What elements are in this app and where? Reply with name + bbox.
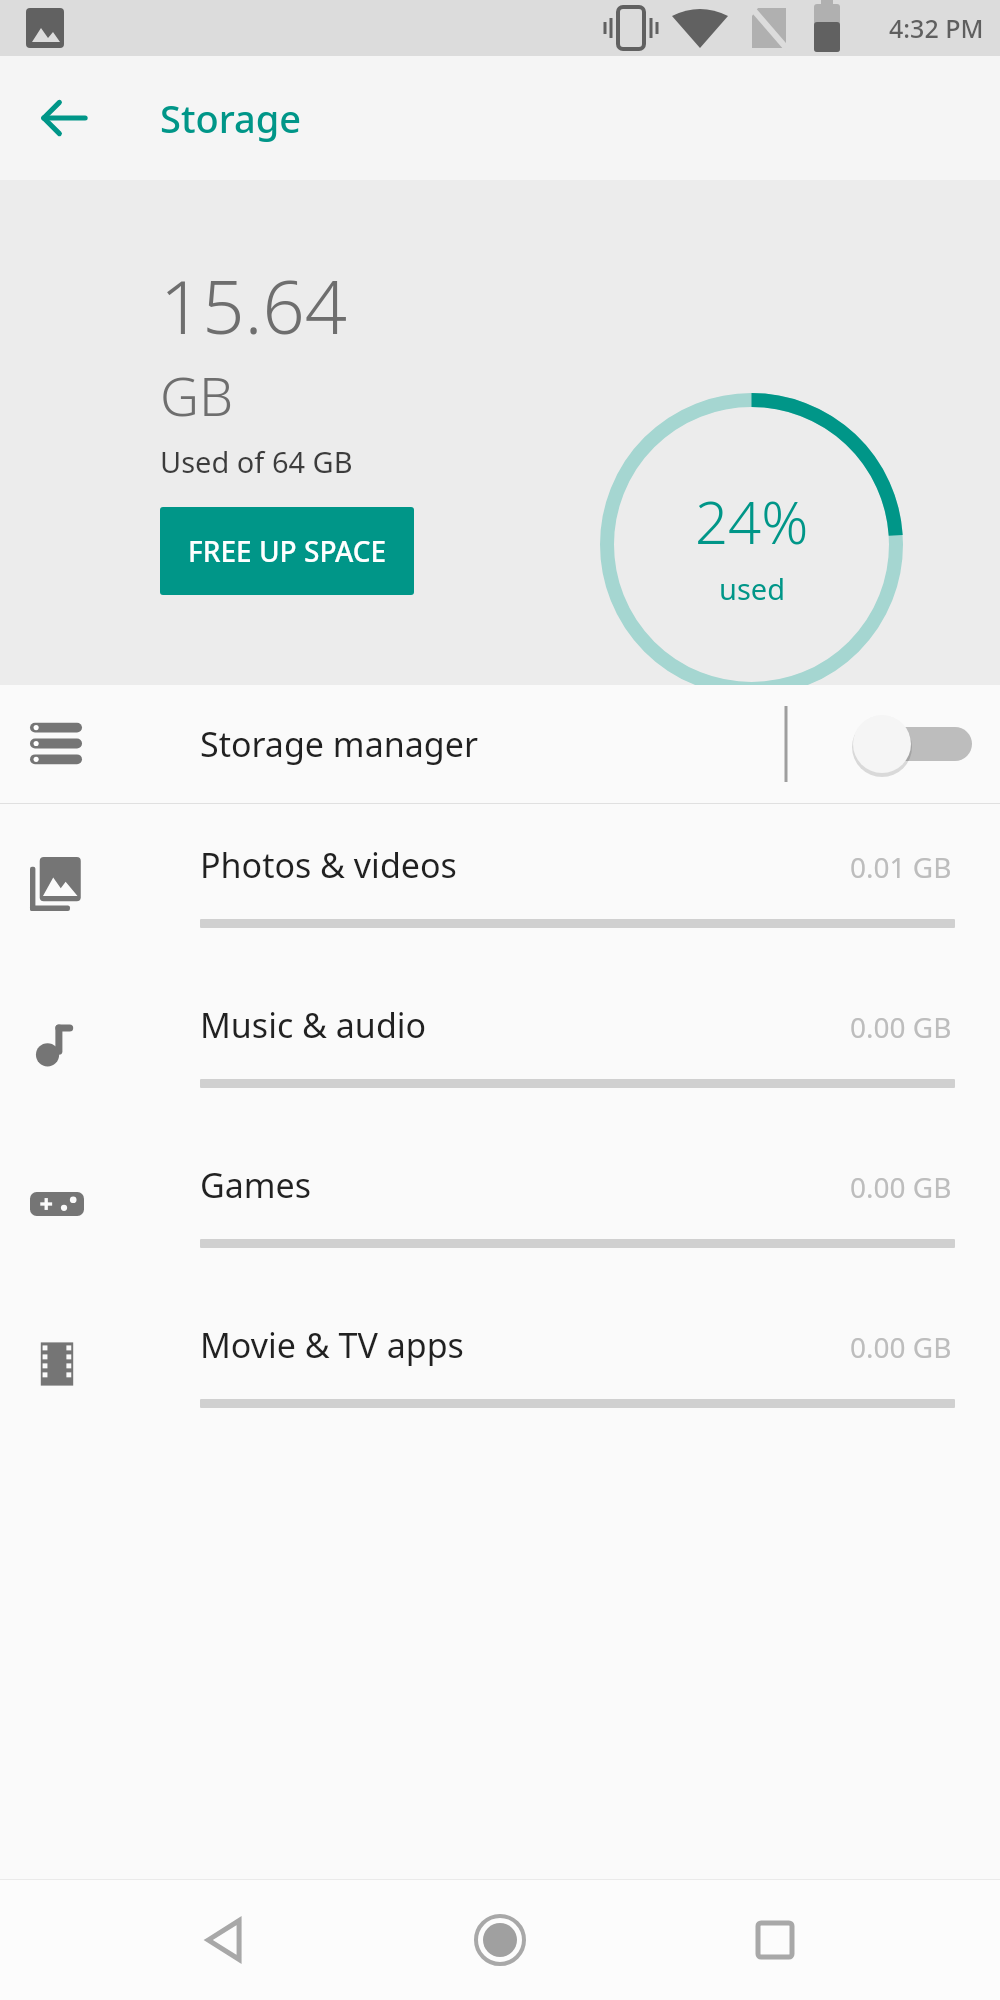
staticText: Games <box>200 1162 312 1208</box>
button[interactable]: Storage manager toggle <box>780 685 980 803</box>
staticText: used <box>719 569 786 608</box>
button[interactable]: Music & audio <box>0 964 1000 1124</box>
button[interactable]: Movie & TV apps <box>0 1284 1000 1444</box>
button[interactable]: Recents <box>725 1890 825 1990</box>
staticText: 0.00 GB <box>850 1168 952 1206</box>
button[interactable]: Photos & videos <box>0 804 1000 964</box>
staticText: 0.00 GB <box>850 1328 952 1366</box>
button[interactable]: Games <box>0 1124 1000 1284</box>
staticText: FREE UP SPACE <box>188 532 387 570</box>
staticText: 0.00 GB <box>850 1008 952 1046</box>
button[interactable]: Back <box>175 1890 275 1990</box>
staticText: Storage manager <box>200 721 478 767</box>
staticText: Storage <box>160 92 302 144</box>
staticText: Used of 64 GB <box>160 442 353 481</box>
staticText: 15.64 <box>160 255 348 356</box>
button[interactable]: Back <box>26 80 102 156</box>
staticText: Music & audio <box>200 1002 427 1048</box>
staticText: 24% <box>695 482 809 561</box>
button[interactable]: FREE UP SPACE <box>160 507 414 595</box>
staticText: 4:32 PM <box>889 11 984 45</box>
staticText: GB <box>160 358 234 432</box>
button[interactable]: Home <box>450 1890 550 1990</box>
staticText: Movie & TV apps <box>200 1322 464 1368</box>
staticText: 0.01 GB <box>850 848 952 886</box>
button[interactable]: Storage manager <box>0 685 1000 803</box>
staticText: Photos & videos <box>200 842 457 888</box>
